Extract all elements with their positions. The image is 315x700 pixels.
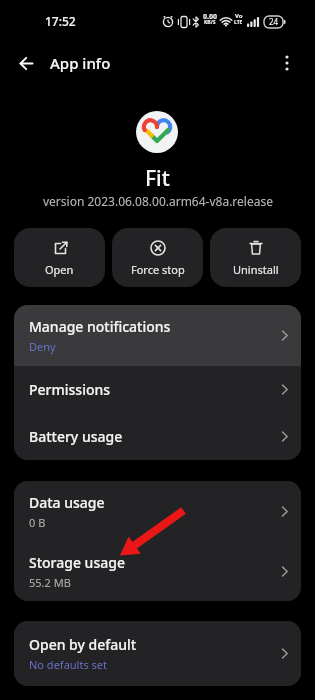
staticText: Storage usage [29,553,125,572]
button[interactable]: Open [14,228,105,287]
staticText: 24 [269,16,279,27]
staticText: Open by default [29,635,137,654]
staticText: 55.2 MB [29,575,71,590]
button[interactable]: Uninstall [210,228,301,287]
staticText: Battery usage [29,427,123,446]
button[interactable]: Permissions [14,366,301,413]
button[interactable]: Force stop [112,228,203,287]
staticText: Vo [235,12,243,20]
staticText: Deny [29,339,56,354]
button[interactable] [12,49,40,77]
staticText: Manage notifications [29,317,171,336]
staticText: 17:52 [45,13,76,29]
staticText: version 2023.06.08.00.arm64-v8a.release [43,193,273,209]
staticText: 0 B [29,515,46,530]
staticText: KB/S [204,19,216,26]
button[interactable] [275,51,299,75]
button[interactable]: Open by default [14,621,301,686]
button[interactable]: Manage notifications [14,305,301,366]
button[interactable]: Data usage [14,481,301,541]
staticText: App info [50,53,111,73]
staticText: Permissions [29,380,111,399]
button[interactable]: Storage usage [14,541,301,601]
staticText: 0.00 [203,12,217,22]
staticText: Uninstall [233,262,279,277]
button[interactable]: Battery usage [14,413,301,460]
staticText: Open [45,262,74,277]
staticText: Fit [145,164,170,193]
staticText: No defaults set [29,657,107,672]
staticText: Data usage [29,493,105,512]
staticText: LTE [234,19,243,26]
staticText: Force stop [131,262,185,277]
